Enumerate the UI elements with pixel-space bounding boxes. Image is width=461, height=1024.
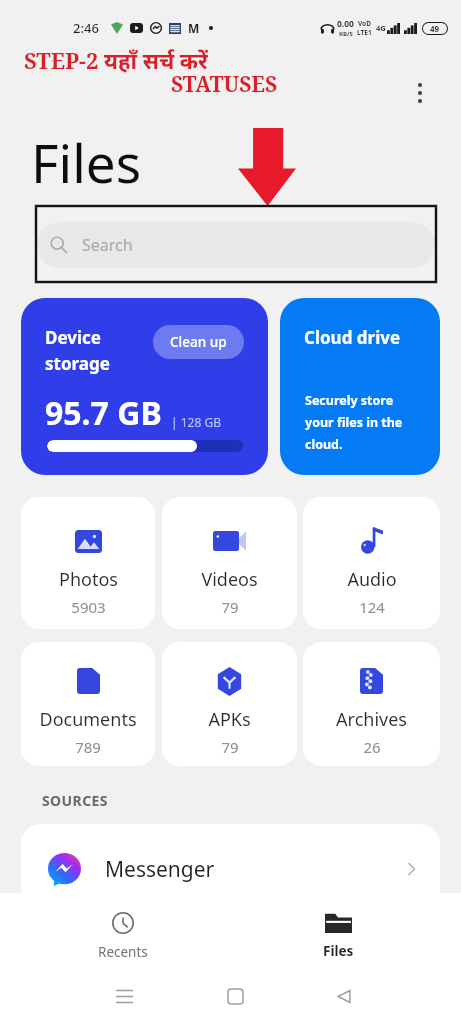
button[interactable]: APKs xyxy=(162,642,297,766)
staticText: | 128 GB xyxy=(171,414,221,430)
staticText: Clean up xyxy=(170,333,227,351)
staticText: 4G xyxy=(376,23,386,33)
staticText: Files xyxy=(323,942,354,960)
button[interactable]: Files xyxy=(288,905,388,967)
staticText: 124 xyxy=(359,597,385,617)
button[interactable]: Home xyxy=(205,972,265,1020)
staticText: APKs xyxy=(208,707,251,732)
staticText: Documents xyxy=(39,707,137,732)
staticText: 2:46 xyxy=(73,19,99,37)
staticText: M xyxy=(188,20,200,36)
staticText: 95.7 GB xyxy=(45,391,162,435)
button[interactable]: Archives xyxy=(303,642,440,766)
staticText: 789 xyxy=(75,737,101,757)
staticText: Device storage xyxy=(45,326,110,375)
button[interactable]: Documents xyxy=(21,642,155,766)
button[interactable]: More options xyxy=(404,70,436,116)
staticText: SOURCES xyxy=(42,791,108,810)
staticText: 26 xyxy=(363,737,381,757)
staticText: 79 xyxy=(221,737,239,757)
staticText: Recents xyxy=(98,943,148,961)
button[interactable]: Search xyxy=(37,222,435,268)
button[interactable]: Recent apps xyxy=(94,972,154,1020)
staticText: Messenger xyxy=(105,855,215,884)
staticText: 79 xyxy=(221,597,239,617)
staticText: Videos xyxy=(201,567,258,592)
button[interactable]: Messenger xyxy=(21,824,440,914)
staticText: 0.00 xyxy=(337,18,354,30)
staticText: Audio xyxy=(347,567,397,592)
button[interactable]: Device storage xyxy=(21,298,268,475)
button[interactable]: Photos xyxy=(21,497,155,629)
staticText: STEP-2 यहाँ सर्च करें xyxy=(24,45,208,75)
button[interactable]: Videos xyxy=(162,497,297,629)
staticText: Photos xyxy=(59,567,118,592)
staticText: Files xyxy=(31,126,142,198)
staticText: KB/S xyxy=(339,30,353,38)
button[interactable]: Recents xyxy=(73,905,173,967)
button[interactable]: Audio xyxy=(303,497,440,629)
staticText: Search xyxy=(82,234,133,256)
button[interactable]: Clean up xyxy=(153,325,244,359)
button[interactable]: Back xyxy=(314,972,374,1020)
staticText: Archives xyxy=(336,707,407,732)
staticText: STATUSES xyxy=(171,70,278,99)
staticText: Cloud drive xyxy=(304,326,401,349)
button[interactable]: Cloud drive xyxy=(280,298,440,475)
staticText: LTE1 xyxy=(357,28,372,37)
staticText: 49 xyxy=(430,23,440,34)
staticText: 5903 xyxy=(71,597,106,617)
staticText: VoD xyxy=(358,19,371,28)
staticText: Securely store your files in the cloud. xyxy=(305,392,403,453)
